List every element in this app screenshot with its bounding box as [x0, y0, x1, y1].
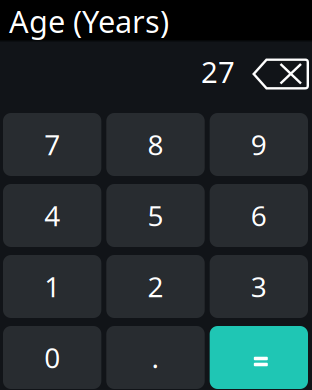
staticText: 1 — [44, 268, 60, 305]
button[interactable]: Equals — [210, 326, 308, 389]
button[interactable]: 9 — [210, 113, 308, 176]
staticText: 3 — [251, 268, 267, 305]
button[interactable]: . — [106, 326, 205, 389]
button[interactable]: 8 — [106, 113, 205, 176]
staticText: 6 — [251, 197, 267, 234]
button[interactable]: 0 — [3, 326, 101, 389]
button[interactable]: 5 — [106, 184, 205, 247]
staticText: 7 — [44, 126, 60, 163]
button[interactable]: 1 — [3, 255, 101, 318]
staticText: 8 — [147, 126, 163, 163]
staticText: 27 — [201, 52, 235, 91]
staticText: 0 — [44, 339, 60, 376]
button[interactable]: Delete — [252, 58, 309, 89]
button[interactable]: 4 — [3, 184, 101, 247]
staticText: 2 — [147, 268, 163, 305]
staticText: . — [151, 339, 159, 376]
staticText: 5 — [147, 197, 163, 234]
staticText: Age (Years) — [9, 1, 169, 41]
button[interactable]: 6 — [210, 184, 308, 247]
staticText: 4 — [44, 197, 60, 234]
staticText: 9 — [251, 126, 267, 163]
button[interactable]: 3 — [210, 255, 308, 318]
button[interactable]: 2 — [106, 255, 205, 318]
button[interactable]: 7 — [3, 113, 101, 176]
